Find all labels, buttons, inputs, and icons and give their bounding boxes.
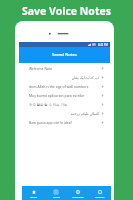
staticText: 자주 활용 할 수 있는 기능 [29,102,99,107]
staticText: Language [72,195,84,198]
staticText: آپ کے لیے ایک پیغام [29,75,99,80]
other: Play note [101,112,104,115]
button[interactable]: Home [22,186,45,200]
staticText: does Allah is the age of wall numbers [29,84,99,89]
staticText: Settings [95,195,105,198]
staticText: Saved [53,195,60,198]
button[interactable]: آپ کے لیے ایک پیغام [19,73,110,82]
other: Play note [101,76,104,79]
staticText: Save Voice Notes [22,4,111,18]
button[interactable]: Language [67,186,89,200]
staticText: Saved Notes [52,52,77,58]
button[interactable]: Bow gusta app con la idea? [19,118,110,127]
staticText: Welcome Note [29,66,99,71]
staticText: Muy buena aplicacion para escribir [29,93,99,98]
button[interactable]: Welcome Note [19,64,110,73]
staticText: السلام عليكم ورحمة [29,111,99,116]
staticText: Bow gusta app con la idea? [29,120,99,125]
button[interactable]: السلام عليكم ورحمة [19,109,110,118]
button[interactable]: Muy buena aplicacion para escribir [19,91,110,100]
other: Play note [101,94,104,97]
other: Play note [101,121,104,124]
button[interactable]: Saved [45,186,67,200]
other: Play note [101,85,104,88]
button[interactable]: Settings [89,186,111,200]
button[interactable]: 자주 활용 할 수 있는 기능 [19,100,110,109]
staticText: 4:42 PM [98,43,108,47]
staticText: Home [30,195,38,198]
other: Play note [101,103,104,106]
other: Play note [101,67,104,70]
button[interactable]: does Allah is the age of wall numbers [19,82,110,91]
